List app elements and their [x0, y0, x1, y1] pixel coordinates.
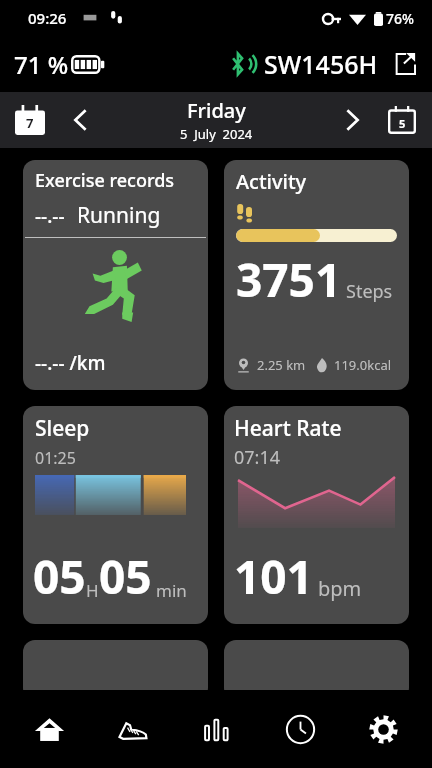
button[interactable]: Exercise [97, 698, 167, 760]
staticText: Heart Rate [234, 414, 342, 443]
button[interactable]: History [265, 698, 335, 760]
button[interactable]: Statistics [181, 698, 251, 760]
staticText: Sleep [35, 414, 90, 443]
button[interactable]: Sleep [23, 406, 208, 624]
staticText: SW1456H [264, 47, 378, 81]
button[interactable]: Activity [224, 160, 409, 390]
staticText: min [156, 579, 187, 602]
staticText: Running [77, 201, 161, 230]
button[interactable]: Heart Rate [224, 406, 409, 624]
staticText: Steps [346, 279, 393, 304]
staticText: --.-- /km [35, 350, 106, 376]
staticText: 01:25 [35, 447, 76, 469]
staticText: 7 [26, 114, 34, 132]
staticText: 5 [399, 116, 406, 131]
staticText: 09:26 [28, 8, 67, 28]
staticText: Exercise records [35, 168, 175, 193]
staticText: 5 July 2024 [180, 125, 253, 143]
button[interactable]: Previous day [58, 98, 102, 142]
staticText: --.-- [35, 203, 65, 229]
button[interactable] [224, 640, 409, 700]
staticText: 101 [234, 545, 313, 608]
staticText: Friday [187, 97, 246, 124]
button[interactable]: Home [14, 698, 84, 760]
button[interactable]: Settings [348, 698, 418, 760]
staticText: bpm [318, 575, 362, 602]
button[interactable]: Pick date [8, 98, 52, 142]
staticText: 71 % [14, 48, 69, 81]
staticText: Activity [236, 168, 307, 195]
button[interactable]: Exercise records [23, 160, 208, 390]
staticText: 119.0kcal [334, 356, 392, 374]
staticText: H [86, 579, 99, 602]
staticText: 05 [99, 545, 152, 608]
button[interactable]: Share [388, 47, 422, 81]
staticText: 05 [33, 545, 86, 608]
staticText: 2.25 km [257, 356, 306, 374]
staticText: 76% [386, 9, 414, 28]
button[interactable] [23, 640, 208, 700]
staticText: 3751 [236, 248, 342, 311]
button[interactable]: Calendar [380, 98, 424, 142]
button[interactable]: Next day [330, 98, 374, 142]
staticText: 07:14 [234, 445, 281, 470]
